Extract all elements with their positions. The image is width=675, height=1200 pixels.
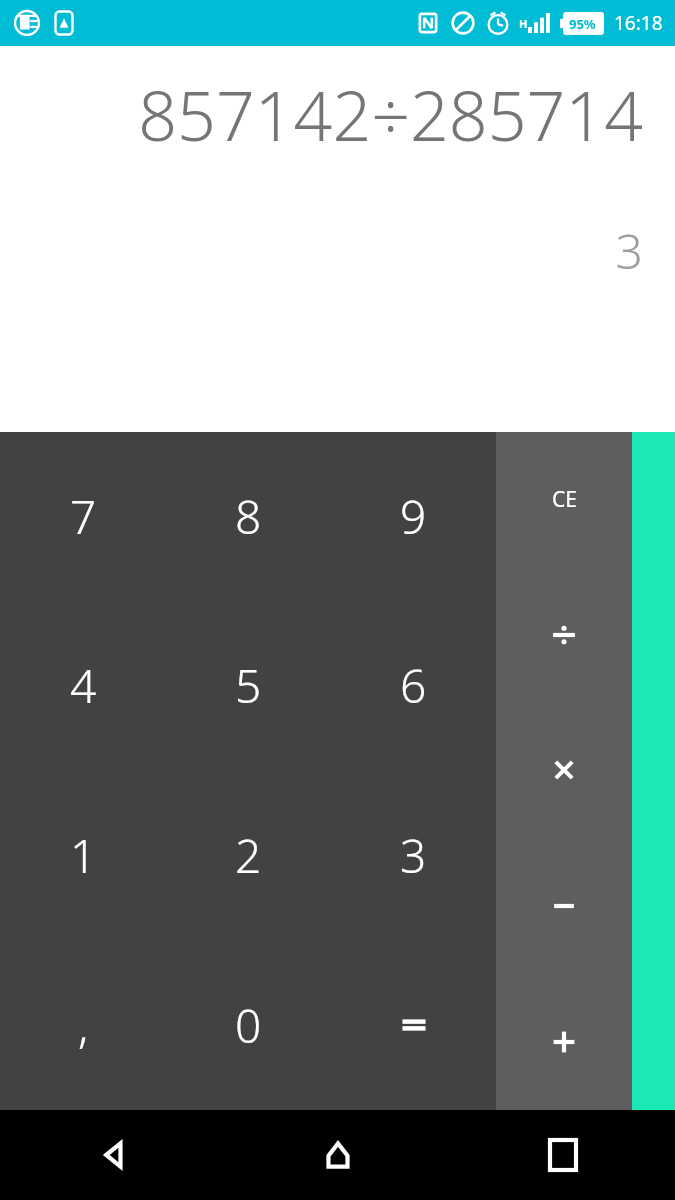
button[interactable]: CE (496, 432, 632, 567)
staticText: 0 (235, 994, 262, 1057)
button[interactable]: Back (0, 1110, 225, 1200)
button[interactable]: 8 (166, 432, 331, 601)
button[interactable]: 7 (0, 432, 166, 601)
staticText: , (78, 994, 89, 1057)
button[interactable]: 9 (331, 432, 496, 601)
staticText: CE (552, 485, 577, 514)
button[interactable]: 2 (166, 770, 331, 940)
staticText: 4 (70, 654, 97, 717)
button[interactable]: Multiply (496, 702, 632, 838)
staticText: 5 (235, 654, 262, 717)
button[interactable]: Recents (450, 1110, 675, 1200)
button[interactable]: Subtract (496, 838, 632, 974)
staticText: 3 (400, 824, 427, 887)
staticText: 16:18 (614, 10, 663, 36)
button[interactable]: 4 (0, 601, 166, 770)
button[interactable]: 0 (166, 940, 331, 1110)
button[interactable]: Home (225, 1110, 450, 1200)
staticText: 7 (70, 485, 97, 548)
button[interactable]: 1 (0, 770, 166, 940)
staticText: 857142÷285714 (138, 68, 643, 161)
staticText: 2 (235, 824, 262, 887)
staticText: 9 (400, 485, 427, 548)
button[interactable]: Divide (496, 567, 632, 702)
staticText: 8 (235, 485, 262, 548)
button[interactable]: 6 (331, 601, 496, 770)
button[interactable]: 5 (166, 601, 331, 770)
button[interactable] (331, 940, 496, 1110)
button[interactable]: Add (496, 974, 632, 1110)
button[interactable]: 3 (331, 770, 496, 940)
staticText: 6 (400, 654, 427, 717)
staticText: 3 (615, 218, 643, 283)
staticText: 95% (569, 15, 596, 33)
staticText: H (519, 16, 528, 31)
button[interactable]: , (0, 940, 166, 1110)
staticText: 1 (70, 824, 97, 887)
